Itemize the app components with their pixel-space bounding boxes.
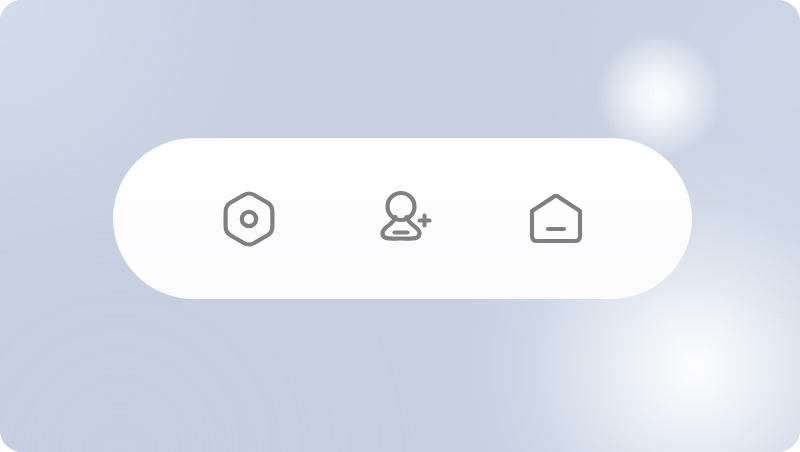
button[interactable]: Add member [367,183,439,255]
button[interactable]: Security [213,183,285,255]
button[interactable]: Home [520,183,592,255]
